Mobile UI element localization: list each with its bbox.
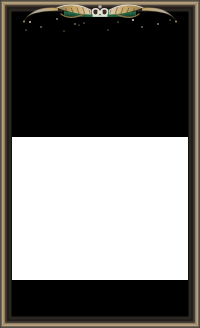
button[interactable]: Ornate framed panel xyxy=(0,0,200,328)
